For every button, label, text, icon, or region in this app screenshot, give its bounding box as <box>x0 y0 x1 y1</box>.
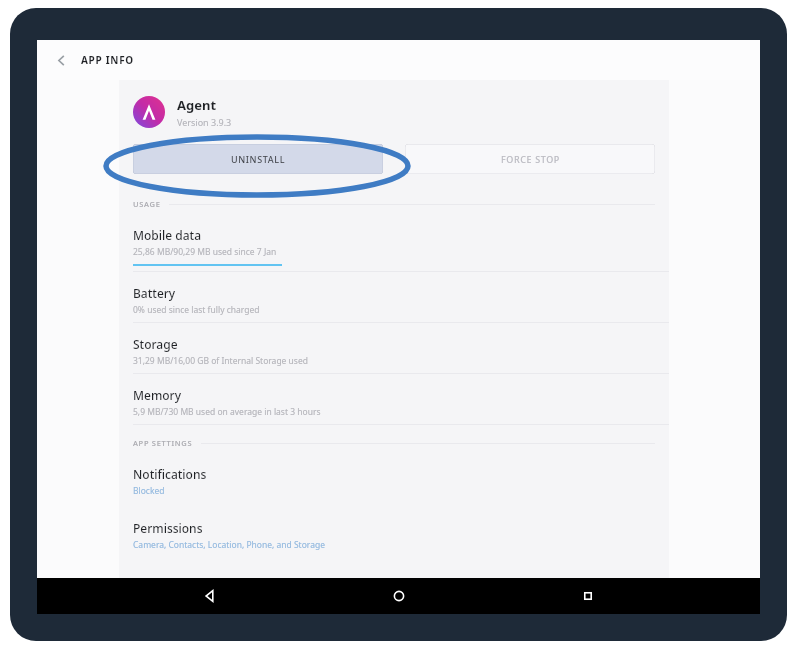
button[interactable]: Battery <box>119 272 669 323</box>
staticText: Blocked <box>133 485 165 497</box>
staticText: APP SETTINGS <box>133 438 193 448</box>
staticText: Battery <box>133 285 176 301</box>
staticText: 31,29 MB/16,00 GB of Internal Storage us… <box>133 355 308 367</box>
staticText: Mobile data <box>133 227 202 243</box>
button[interactable]: Permissions <box>119 507 669 561</box>
staticText: Permissions <box>133 520 203 536</box>
button[interactable]: Storage <box>119 323 669 374</box>
button[interactable]: Memory <box>119 374 669 425</box>
button[interactable]: Home <box>382 579 416 613</box>
button[interactable]: Recents <box>571 579 605 613</box>
staticText: UNINSTALL <box>231 153 286 165</box>
button[interactable]: Mobile data <box>119 214 669 272</box>
staticText: Version 3.9.3 <box>177 116 232 128</box>
staticText: Notifications <box>133 466 207 482</box>
staticText: APP INFO <box>81 53 134 67</box>
button[interactable]: Back <box>193 579 227 613</box>
button[interactable]: FORCE STOP <box>405 144 655 174</box>
staticText: 5,9 MB/730 MB used on average in last 3 … <box>133 406 321 418</box>
staticText: Agent <box>177 96 217 114</box>
staticText: 0% used since last fully charged <box>133 304 260 316</box>
button[interactable]: UNINSTALL <box>133 144 383 174</box>
button[interactable]: Back <box>47 46 75 74</box>
staticText: Camera, Contacts, Location, Phone, and S… <box>133 539 325 551</box>
staticText: Memory <box>133 387 182 403</box>
staticText: Storage <box>133 336 178 352</box>
staticText: 25,86 MB/90,29 MB used since 7 Jan <box>133 246 277 258</box>
staticText: USAGE <box>133 199 161 209</box>
staticText: FORCE STOP <box>501 153 560 165</box>
button[interactable]: Notifications <box>119 453 669 507</box>
